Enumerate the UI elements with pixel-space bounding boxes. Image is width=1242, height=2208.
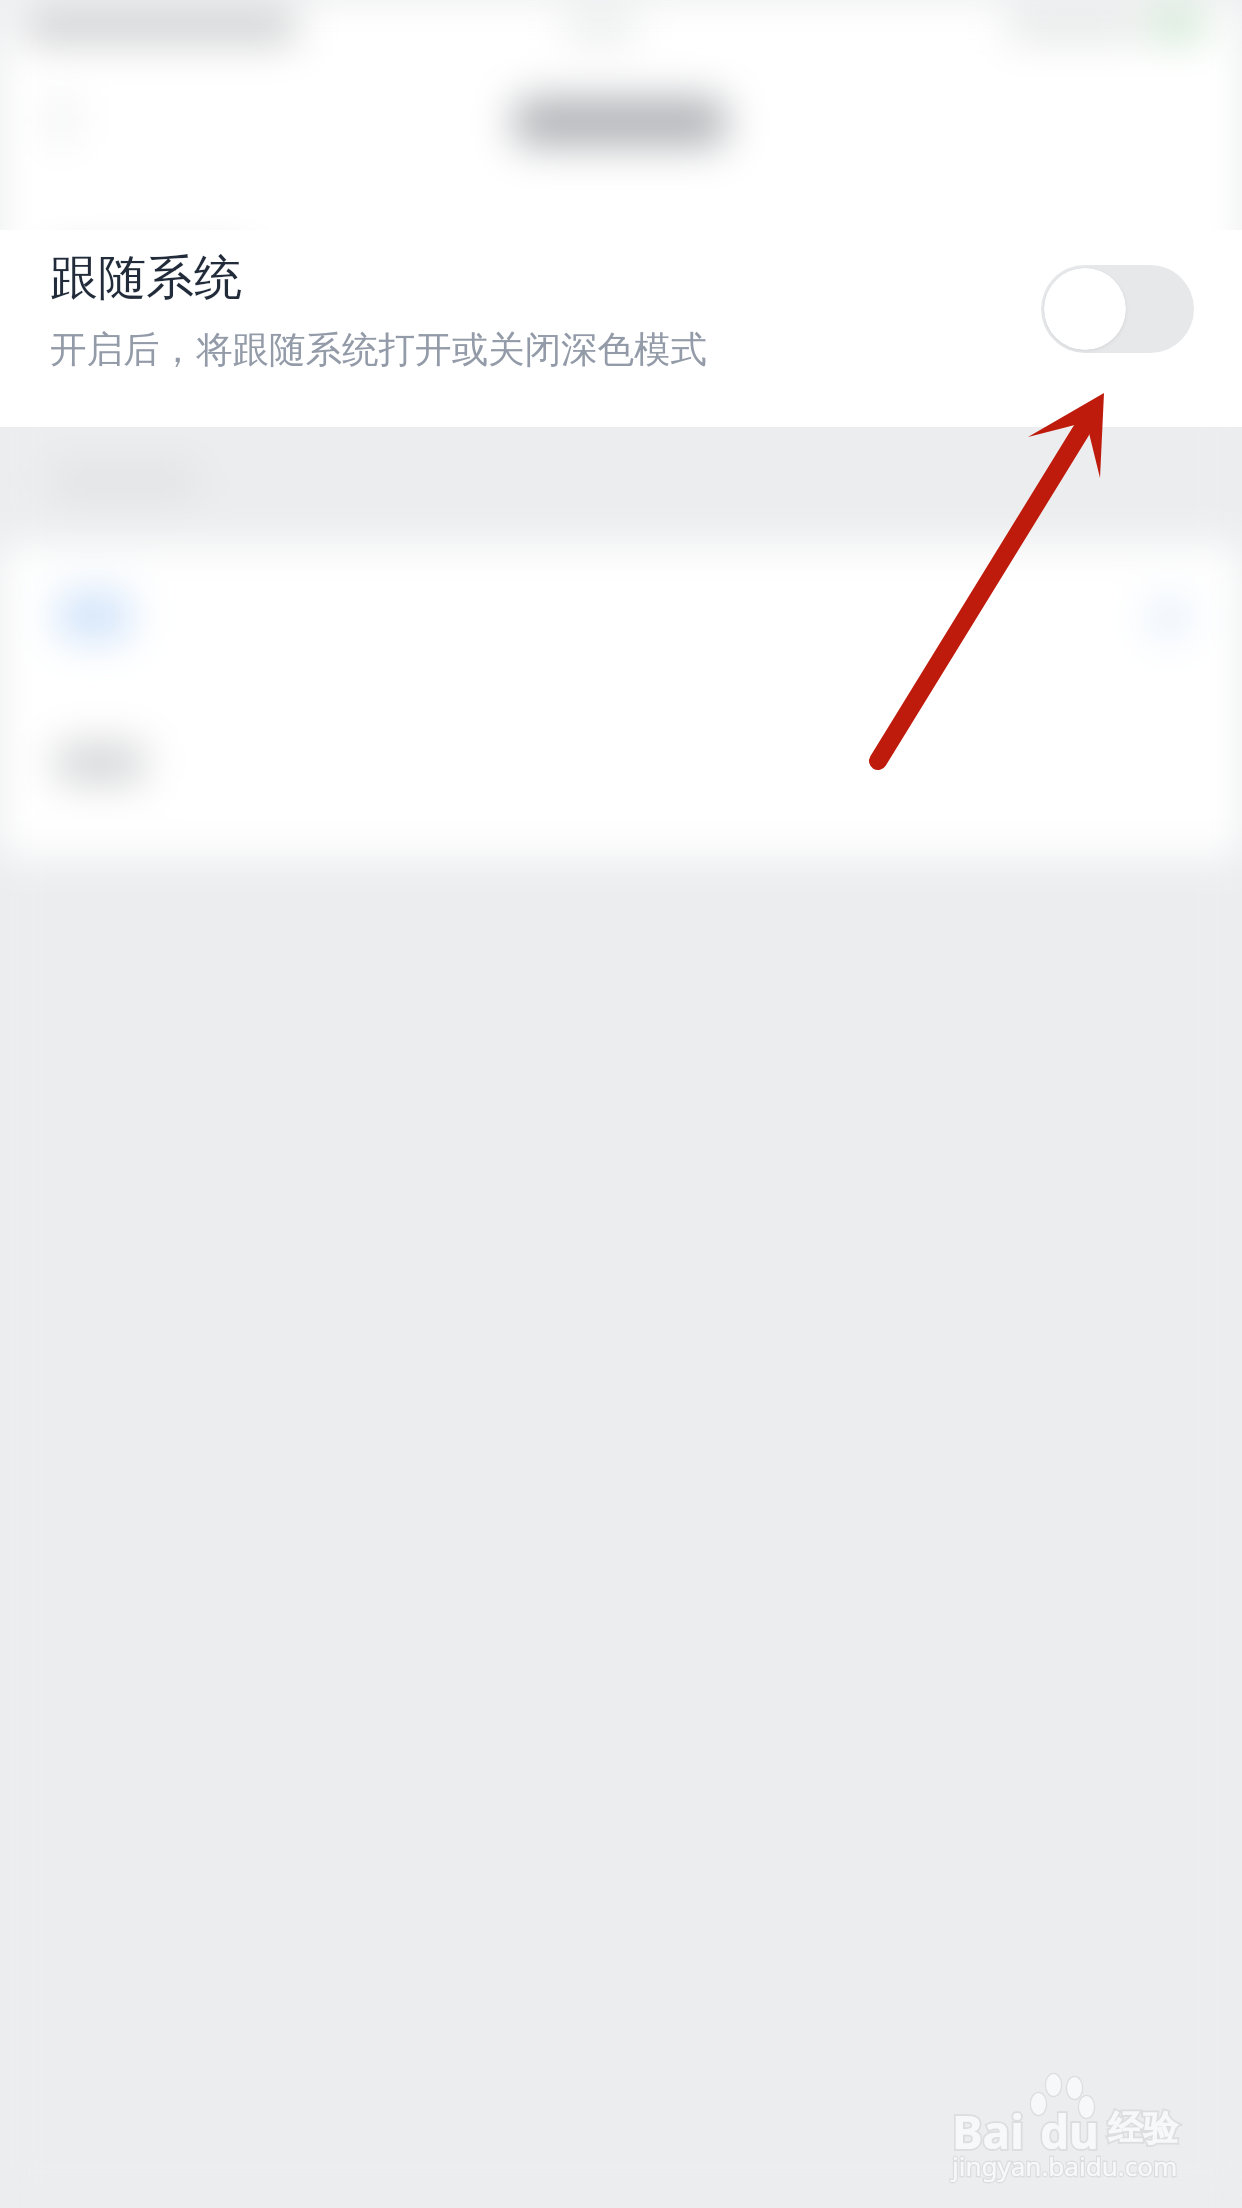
staticText: 经验: [1108, 2106, 1178, 2150]
button[interactable]: 跟随系统开关: [1041, 265, 1194, 353]
staticText: Bai: [952, 2100, 1024, 2163]
staticText: du: [1040, 2100, 1099, 2163]
staticText: 开启后，将跟随系统打开或关闭深色模式: [50, 327, 707, 373]
staticText: jingyan.baidu.com: [952, 2148, 1178, 2183]
staticText: 跟随系统: [50, 248, 242, 308]
staticText: Bai: [952, 2100, 1024, 2163]
button[interactable]: 跟随系统: [0, 230, 1242, 427]
staticText: jingyan.baidu.com: [952, 2148, 1178, 2183]
staticText: 经验: [1108, 2106, 1178, 2150]
staticText: du: [1040, 2100, 1099, 2163]
